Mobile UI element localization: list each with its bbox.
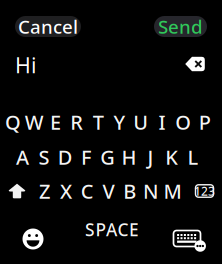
staticText: Y <box>113 109 125 135</box>
button[interactable]: A <box>12 142 33 172</box>
button[interactable]: D <box>54 142 76 172</box>
button[interactable]: O <box>173 107 194 137</box>
button[interactable]: S <box>33 142 54 172</box>
staticText: V <box>102 178 114 204</box>
button[interactable]: C <box>77 176 98 206</box>
button[interactable]: L <box>182 142 204 172</box>
staticText: D <box>58 144 73 170</box>
staticText: K <box>165 144 178 170</box>
staticText: X <box>60 178 72 204</box>
staticText: H <box>122 144 137 170</box>
staticText: N <box>143 178 159 204</box>
staticText: W <box>25 109 44 135</box>
button[interactable]: Y <box>109 107 130 137</box>
button[interactable]: Delete <box>185 56 205 72</box>
button[interactable]: F <box>76 142 97 172</box>
staticText: S <box>38 144 49 170</box>
staticText: R <box>70 109 83 135</box>
button[interactable]: Q <box>2 107 24 137</box>
staticText: M <box>163 178 181 204</box>
staticText: Send <box>158 14 203 39</box>
staticText: E <box>50 109 61 135</box>
button[interactable]: K <box>161 142 182 172</box>
staticText: C <box>81 178 94 204</box>
staticText: Hi <box>15 51 37 79</box>
staticText: O <box>175 109 191 135</box>
button[interactable]: T <box>87 107 109 137</box>
button[interactable]: Z <box>34 176 55 206</box>
staticText: L <box>187 144 198 170</box>
button[interactable]: W <box>24 107 45 137</box>
button[interactable]: Emoji <box>15 226 51 252</box>
button[interactable]: Cancel <box>15 16 81 37</box>
staticText: I <box>158 109 165 135</box>
button[interactable]: R <box>66 107 87 137</box>
staticText: G <box>100 144 115 170</box>
staticText: B <box>123 178 136 204</box>
staticText: Q <box>5 109 21 135</box>
staticText: Z <box>39 178 50 204</box>
button[interactable]: J <box>140 142 161 172</box>
button[interactable]: P <box>194 107 215 137</box>
button[interactable]: Shift <box>4 176 30 206</box>
staticText: Cancel <box>18 14 78 39</box>
button[interactable]: X <box>55 176 76 206</box>
staticText: U <box>133 109 148 135</box>
button[interactable]: Send <box>154 16 207 37</box>
button[interactable]: N <box>140 176 162 206</box>
staticText: P <box>199 109 211 135</box>
button[interactable]: B <box>119 176 140 206</box>
staticText: A <box>16 144 29 170</box>
button[interactable]: Switch keyboard <box>172 228 208 254</box>
button[interactable]: G <box>97 142 118 172</box>
button[interactable]: I <box>151 107 173 137</box>
staticText: F <box>81 144 92 170</box>
staticText: J <box>147 144 153 170</box>
button[interactable]: M <box>162 176 183 206</box>
button[interactable]: U <box>130 107 151 137</box>
button[interactable]: SPACE <box>72 216 152 242</box>
staticText: SPACE <box>85 218 139 241</box>
staticText: T <box>93 109 104 135</box>
button[interactable]: H <box>118 142 140 172</box>
staticText: 123 <box>194 183 215 199</box>
button[interactable]: Numbers and symbols <box>191 176 217 206</box>
button[interactable]: V <box>98 176 119 206</box>
button[interactable]: E <box>45 107 66 137</box>
